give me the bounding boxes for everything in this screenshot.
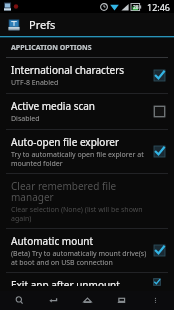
button[interactable]: International characters xyxy=(0,58,174,93)
button[interactable]: Home xyxy=(72,291,102,310)
staticText: Active media scan xyxy=(11,99,96,113)
staticText: Automatic mount xyxy=(11,234,94,248)
button[interactable]: Checked xyxy=(153,145,166,158)
staticText: International characters xyxy=(11,63,125,77)
other: App icon xyxy=(7,18,21,32)
staticText: UTF-8 Enabled xyxy=(11,78,59,88)
staticText: Clear selection (None) (list will be sho… xyxy=(11,205,147,223)
staticText: 12:46 xyxy=(147,1,171,13)
button[interactable]: Checked xyxy=(153,244,166,257)
button[interactable]: Unchecked xyxy=(153,105,166,118)
staticText: 28 xyxy=(133,4,139,11)
button[interactable]: Auto-open file explorer xyxy=(0,130,174,173)
button: Clear remembered file manager xyxy=(0,174,174,228)
staticText: Clear remembered file manager xyxy=(11,179,147,204)
button[interactable]: Automatic mount xyxy=(0,229,174,272)
staticText: Prefs xyxy=(29,17,56,32)
button[interactable]: Active media scan xyxy=(0,94,174,129)
button[interactable]: Search xyxy=(4,291,34,310)
button[interactable]: Menu xyxy=(140,291,170,310)
button[interactable]: Exit app after unmount xyxy=(0,273,174,291)
staticText: Disabled xyxy=(11,114,40,124)
staticText: Try to automatically open file explorer … xyxy=(11,150,147,168)
staticText: (Beta) Try to automatically mount drive(… xyxy=(11,249,147,267)
staticText: Exit app after unmount xyxy=(11,278,120,286)
staticText: Auto-open file explorer xyxy=(11,135,120,149)
staticText: APPLICATION OPTIONS xyxy=(11,43,92,53)
button[interactable]: Checked xyxy=(153,69,166,82)
button[interactable]: Recents xyxy=(106,291,136,310)
button[interactable]: App icon xyxy=(0,13,174,36)
button[interactable]: Checked xyxy=(153,278,166,286)
button[interactable]: Back xyxy=(38,291,68,310)
